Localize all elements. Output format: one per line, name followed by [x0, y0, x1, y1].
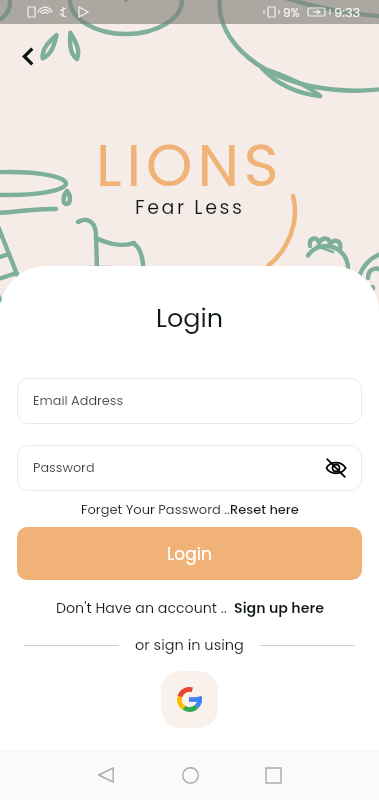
- button[interactable]: Password: [17, 445, 362, 491]
- staticText: Fear Less: [135, 194, 245, 221]
- button[interactable]: Back: [8, 36, 48, 76]
- button[interactable]: Email Address: [17, 378, 362, 424]
- button[interactable]: Reset here: [230, 500, 299, 518]
- staticText: Login: [0, 300, 379, 336]
- staticText: LIONS: [96, 124, 284, 207]
- staticText: Login: [167, 542, 212, 566]
- button[interactable]: Sign in with Google: [161, 671, 218, 728]
- button[interactable]: Home: [170, 755, 210, 795]
- staticText: Forget Your Password ..: [81, 500, 230, 518]
- button[interactable]: Sign up here: [234, 598, 324, 618]
- button[interactable]: Login: [17, 527, 362, 580]
- staticText: Don't Have an account ..: [56, 598, 227, 618]
- staticText: Password: [33, 459, 95, 477]
- button[interactable]: Back: [86, 755, 126, 795]
- staticText: or sign in using: [135, 635, 244, 655]
- staticText: Email Address: [33, 392, 124, 410]
- staticText: 9%: [283, 4, 300, 21]
- button[interactable]: Toggle password visibility: [322, 454, 350, 482]
- staticText: 9:33: [334, 3, 361, 21]
- button[interactable]: Recents: [253, 755, 293, 795]
